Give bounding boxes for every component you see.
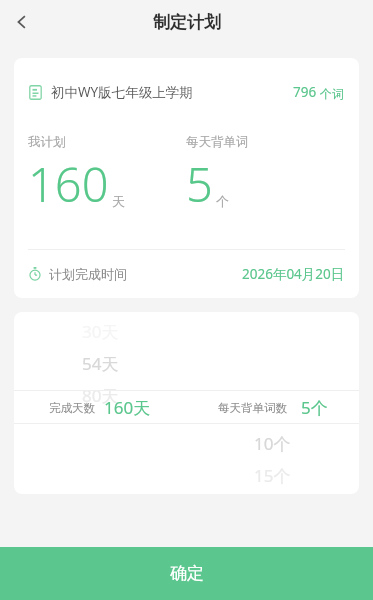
button[interactable]: 确定 [0, 547, 373, 600]
staticText: 完成天数 [49, 401, 95, 415]
staticText: 2026年04月20日 [242, 265, 345, 283]
button[interactable]: 每天背单词数 [186, 396, 359, 419]
staticText: 初中WY版七年级上学期 [51, 83, 193, 101]
staticText: 10个 [254, 432, 291, 455]
staticText: 制定计划 [153, 12, 221, 33]
staticText: 15个 [254, 464, 291, 487]
button[interactable]: 初中WY版七年级上学期 [14, 58, 359, 126]
staticText: 天 [112, 193, 125, 209]
staticText: 54天 [82, 352, 119, 375]
staticText: 个 [216, 193, 229, 209]
button[interactable]: Back [0, 0, 44, 44]
staticText: 计划完成时间 [49, 266, 127, 282]
staticText: 个词 [317, 85, 345, 101]
staticText: 确定 [170, 563, 204, 584]
staticText: 我计划 [28, 134, 66, 150]
staticText: 80天 [82, 384, 119, 407]
staticText: 30天 [82, 320, 119, 343]
button[interactable]: 计划完成时间 [14, 250, 359, 298]
button[interactable]: 完成天数 [14, 396, 186, 419]
staticText: 160 [28, 152, 109, 216]
staticText: 每天背单词数 [218, 401, 287, 415]
staticText: 每天背单词 [186, 134, 249, 150]
staticText: 796 [293, 83, 317, 101]
staticText: 160天 [104, 396, 151, 419]
staticText: 5个 [301, 396, 328, 419]
staticText: 5 [186, 152, 213, 216]
